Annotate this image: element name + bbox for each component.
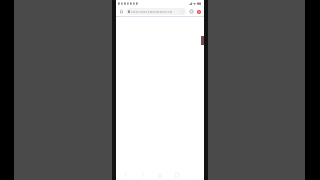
button[interactable]: Home (118, 8, 125, 15)
button[interactable] (126, 8, 186, 15)
button[interactable]: Menu (195, 8, 202, 15)
button[interactable]: Home (153, 169, 167, 180)
button[interactable]: Tab switcher (188, 8, 195, 15)
